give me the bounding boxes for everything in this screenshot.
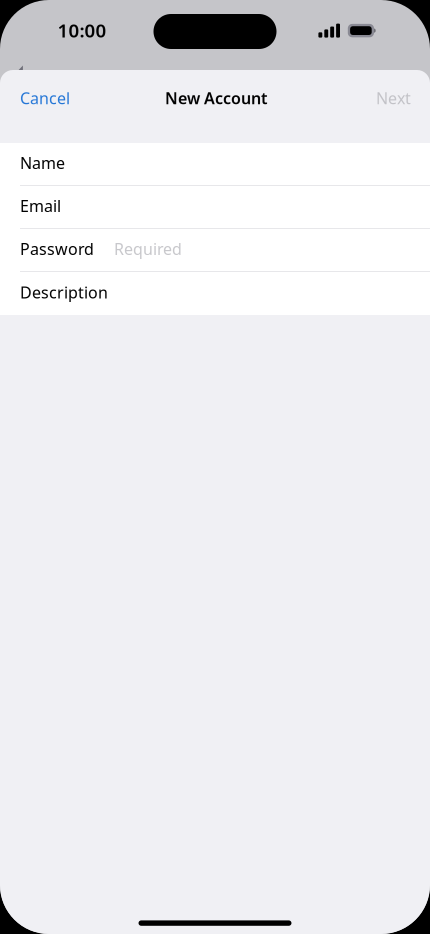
staticText: Password bbox=[20, 238, 94, 259]
staticText: Description bbox=[20, 282, 108, 303]
button[interactable]: Name bbox=[0, 143, 430, 186]
staticText: Email bbox=[20, 195, 61, 216]
button[interactable]: Cancel bbox=[0, 76, 90, 120]
staticText: Name bbox=[20, 152, 65, 173]
button[interactable]: Description bbox=[0, 272, 430, 315]
staticText: New Account bbox=[165, 87, 267, 109]
staticText: Cancel bbox=[20, 87, 70, 109]
button[interactable]: Password bbox=[0, 229, 430, 272]
staticText: Next bbox=[376, 87, 411, 109]
button[interactable]: Next bbox=[357, 76, 430, 120]
button[interactable]: Email bbox=[0, 186, 430, 229]
staticText: Required bbox=[114, 238, 182, 259]
staticText: 10:00 bbox=[57, 18, 106, 43]
